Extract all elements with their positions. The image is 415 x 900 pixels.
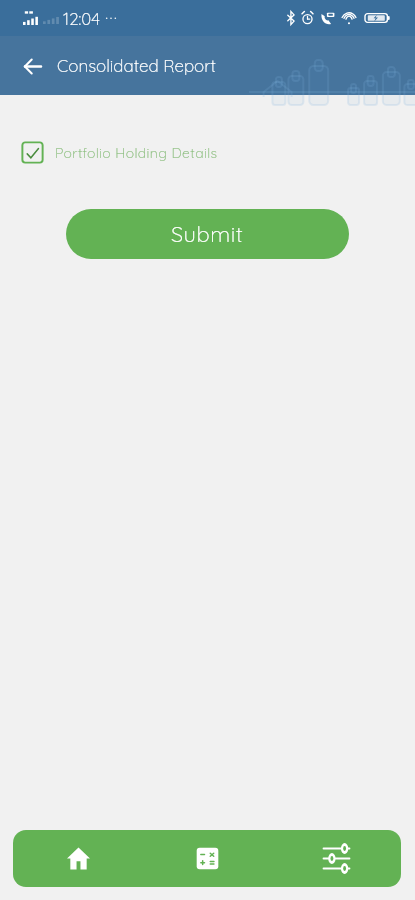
button[interactable]: Settings xyxy=(272,830,401,887)
staticText: Submit xyxy=(171,220,244,248)
button[interactable]: Calculator xyxy=(143,830,272,887)
button[interactable]: Portfolio Holding Details xyxy=(21,141,415,164)
staticText: 12:04 xyxy=(63,8,100,29)
button[interactable]: Submit xyxy=(66,209,349,259)
staticText: Consolidated Report xyxy=(57,55,216,76)
button[interactable]: Home xyxy=(13,830,143,887)
button[interactable]: Back xyxy=(17,51,47,81)
staticText: Portfolio Holding Details xyxy=(55,144,218,162)
